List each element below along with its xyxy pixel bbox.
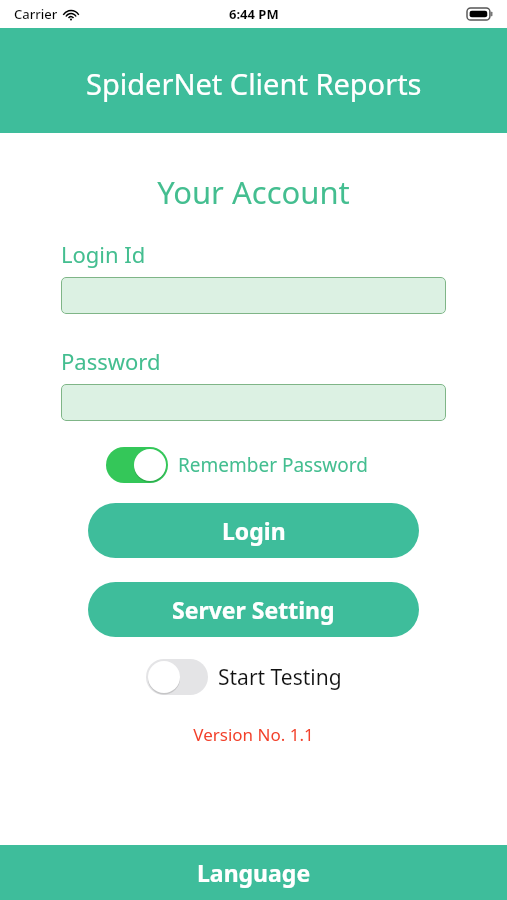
staticText: Start Testing xyxy=(218,663,342,692)
button[interactable]: Login xyxy=(88,503,419,558)
staticText: SpiderNet Client Reports xyxy=(86,64,422,103)
staticText: Remember Password xyxy=(178,452,368,478)
staticText: 6:44 PM xyxy=(229,5,279,23)
button[interactable]: Toggle off xyxy=(146,659,342,695)
other: Toggle on xyxy=(106,447,168,483)
button[interactable] xyxy=(61,384,446,421)
staticText: Language xyxy=(197,857,311,888)
button[interactable]: Toggle on xyxy=(106,447,368,483)
button[interactable]: Server Setting xyxy=(88,582,419,637)
staticText: Password xyxy=(61,346,161,376)
button[interactable] xyxy=(61,277,446,314)
staticText: Your Account xyxy=(0,171,507,213)
other: Toggle off xyxy=(146,659,208,695)
button[interactable]: Language xyxy=(0,845,507,900)
staticText: Server Setting xyxy=(172,594,335,625)
staticText: Carrier xyxy=(14,5,58,23)
staticText: Login Id xyxy=(61,239,146,269)
staticText: Login xyxy=(222,515,286,546)
staticText: Version No. 1.1 xyxy=(0,723,507,746)
